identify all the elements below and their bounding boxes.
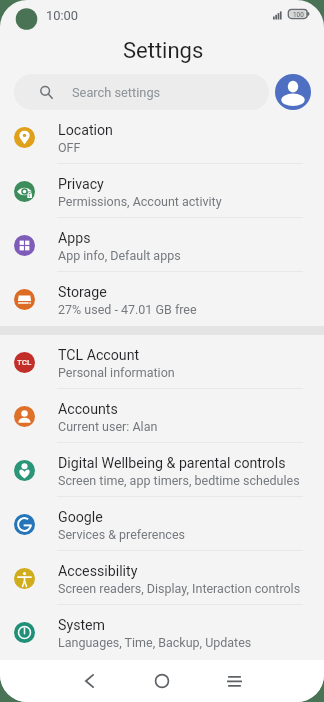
button[interactable]: TCL [0,335,324,389]
staticText: TCL [17,358,32,367]
staticText: 100 [293,11,304,19]
button[interactable]: System [0,605,324,659]
staticText: Google [58,509,103,526]
button[interactable]: Back [65,660,114,702]
button[interactable]: Accounts [0,389,324,443]
staticText: Storage [58,284,107,301]
button[interactable]: Home [137,660,186,702]
staticText: Settings [123,38,204,64]
button[interactable]: Recent apps [209,660,259,702]
button[interactable]: Location [0,110,324,164]
staticText: Accounts [58,401,118,418]
staticText: Permissions, Account activity [58,194,222,209]
staticText: Screen readers, Display, Interaction con… [58,581,301,596]
staticText: Digital Wellbeing & parental controls [58,455,286,472]
button[interactable]: Google [0,497,324,551]
staticText: Apps [58,230,91,247]
button[interactable]: Search settings [14,74,269,110]
staticText: Languages, Time, Backup, Updates [58,635,252,650]
button[interactable]: Digital Wellbeing & parental controls [0,443,324,497]
staticText: TCL Account [58,347,140,364]
staticText: 27% used - 47.01 GB free [58,302,197,317]
button[interactable]: Account [275,74,311,110]
staticText: App info, Default apps [58,248,181,263]
staticText: Accessibility [58,563,138,580]
staticText: Current user: Alan [58,419,158,434]
staticText: Screen time, app timers, bedtime schedul… [58,473,300,488]
button[interactable]: Privacy [0,164,324,218]
staticText: Location [58,122,113,139]
button[interactable]: Storage [0,272,324,326]
button[interactable]: Apps [0,218,324,272]
staticText: Services & preferences [58,527,185,542]
staticText: Search settings [72,85,161,100]
staticText: System [58,617,106,634]
button[interactable]: Accessibility [0,551,324,605]
staticText: Personal information [58,365,175,380]
staticText: OFF [58,140,81,155]
staticText: 10:00 [46,8,79,23]
staticText: Privacy [58,176,104,193]
